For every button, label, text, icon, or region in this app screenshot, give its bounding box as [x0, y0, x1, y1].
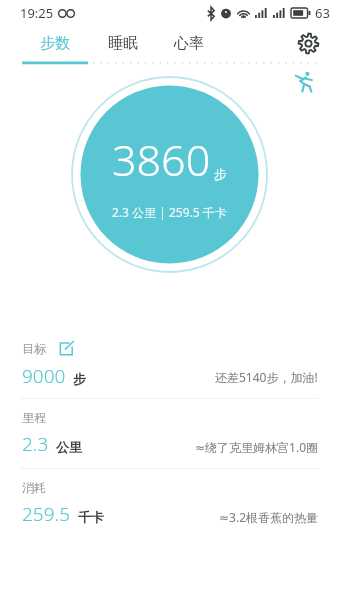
button[interactable]: Edit goal [57, 339, 75, 357]
staticText: ≈3.2根香蕉的热量 [219, 509, 318, 525]
button[interactable]: Activity details [288, 67, 318, 97]
button[interactable]: Settings [288, 26, 328, 60]
staticText: 千卡 [78, 509, 104, 525]
button[interactable]: 步数 [22, 26, 88, 60]
staticText: 还差5140步，加油! [215, 369, 318, 385]
button[interactable]: 3860 [71, 76, 268, 273]
staticText: 19:25 [20, 4, 54, 22]
staticText: ≈绕了克里姆林宫1.0圈 [195, 439, 318, 455]
staticText: 里程 [22, 410, 46, 425]
staticText: 63 [315, 4, 330, 22]
staticText: 消耗 [22, 480, 46, 495]
staticText: 2.3 [22, 431, 49, 457]
button[interactable]: 消耗 [0, 469, 338, 538]
staticText: 步 [214, 166, 227, 182]
staticText: 睡眠 [108, 34, 138, 53]
staticText: 公里 [56, 439, 82, 455]
button[interactable]: 目标 [0, 329, 338, 398]
button[interactable]: 里程 [0, 399, 338, 468]
staticText: 9000 [22, 363, 66, 389]
staticText: 心率 [174, 34, 204, 53]
staticText: 259.5 [22, 501, 71, 527]
staticText: 3860 [112, 130, 211, 189]
staticText: 目标 [22, 341, 46, 356]
staticText: 步 [73, 371, 86, 387]
button[interactable]: 睡眠 [90, 26, 156, 60]
staticText: 2.3 公里 | 259.5 千卡 [112, 204, 227, 220]
button[interactable]: 心率 [156, 26, 222, 60]
staticText: 步数 [40, 34, 70, 53]
